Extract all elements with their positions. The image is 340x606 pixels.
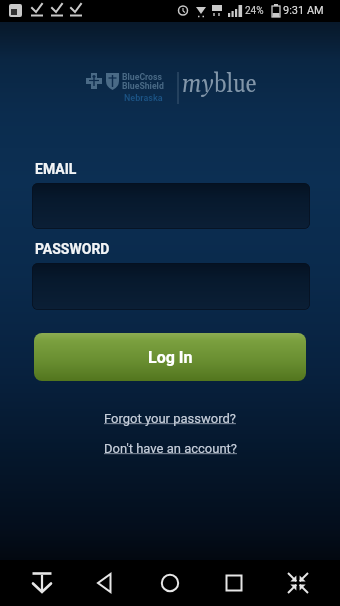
staticText: BlueCross	[122, 72, 162, 82]
button[interactable]	[84, 560, 128, 606]
button[interactable]: Forgot your password?	[104, 411, 236, 426]
button[interactable]: Log In	[34, 333, 306, 381]
staticText: my	[182, 68, 214, 101]
button[interactable]: Don't have an account?	[104, 441, 237, 456]
button[interactable]	[20, 560, 64, 606]
staticText: Nebraska	[124, 93, 163, 104]
staticText: EMAIL	[35, 161, 77, 177]
button[interactable]	[32, 263, 310, 310]
button[interactable]	[148, 560, 192, 606]
button[interactable]	[212, 560, 256, 606]
staticText: Log In	[148, 348, 193, 367]
staticText: blue	[214, 68, 257, 101]
staticText: 9:31 AM	[283, 4, 324, 17]
staticText: 24%	[245, 5, 264, 17]
button[interactable]	[276, 560, 320, 606]
staticText: PASSWORD	[35, 241, 110, 257]
button[interactable]	[32, 183, 310, 229]
staticText: BlueShield	[122, 81, 164, 91]
